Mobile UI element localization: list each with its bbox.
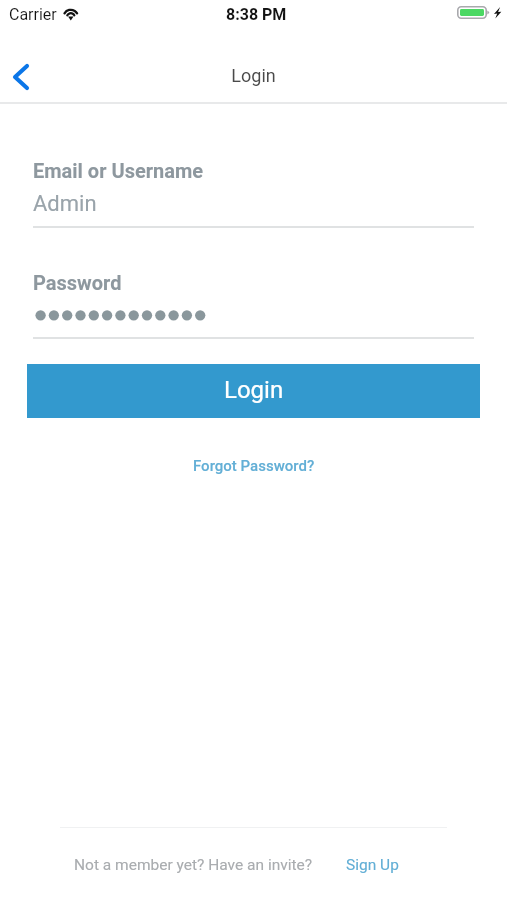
staticText: Login: [0, 65, 507, 86]
staticText: Admin: [33, 191, 97, 217]
staticText: Not a member yet? Have an invite?: [74, 856, 313, 874]
staticText: Password: [33, 271, 122, 294]
staticText: Login: [224, 376, 284, 404]
button[interactable]: Back: [0, 48, 44, 96]
staticText: 8:38 PM: [226, 5, 287, 24]
staticText: Email or Username: [33, 159, 204, 182]
staticText: Carrier: [9, 5, 57, 24]
button[interactable]: Sign Up: [346, 856, 399, 874]
button[interactable]: Login: [27, 364, 480, 418]
button[interactable]: Forgot Password?: [193, 457, 315, 475]
